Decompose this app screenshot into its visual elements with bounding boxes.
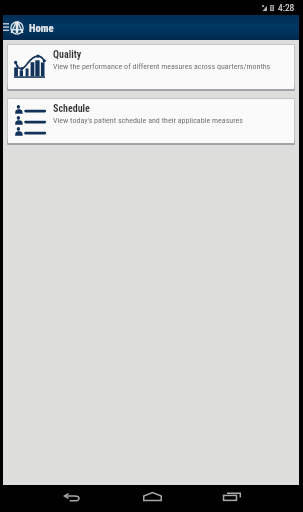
- staticText: View today's patient schedule and their …: [53, 116, 243, 125]
- button[interactable]: Home: [3, 15, 299, 40]
- button[interactable]: Home: [112, 485, 192, 512]
- staticText: Home: [29, 22, 54, 34]
- button[interactable]: Back: [32, 485, 112, 512]
- staticText: Schedule: [53, 103, 90, 115]
- staticText: Quality: [53, 49, 82, 61]
- button[interactable]: Schedule: [8, 99, 294, 143]
- button[interactable]: Quality: [8, 45, 294, 89]
- staticText: 4:28: [278, 2, 295, 13]
- staticText: View the performance of different measur…: [53, 62, 271, 71]
- button[interactable]: Recent apps: [192, 485, 272, 512]
